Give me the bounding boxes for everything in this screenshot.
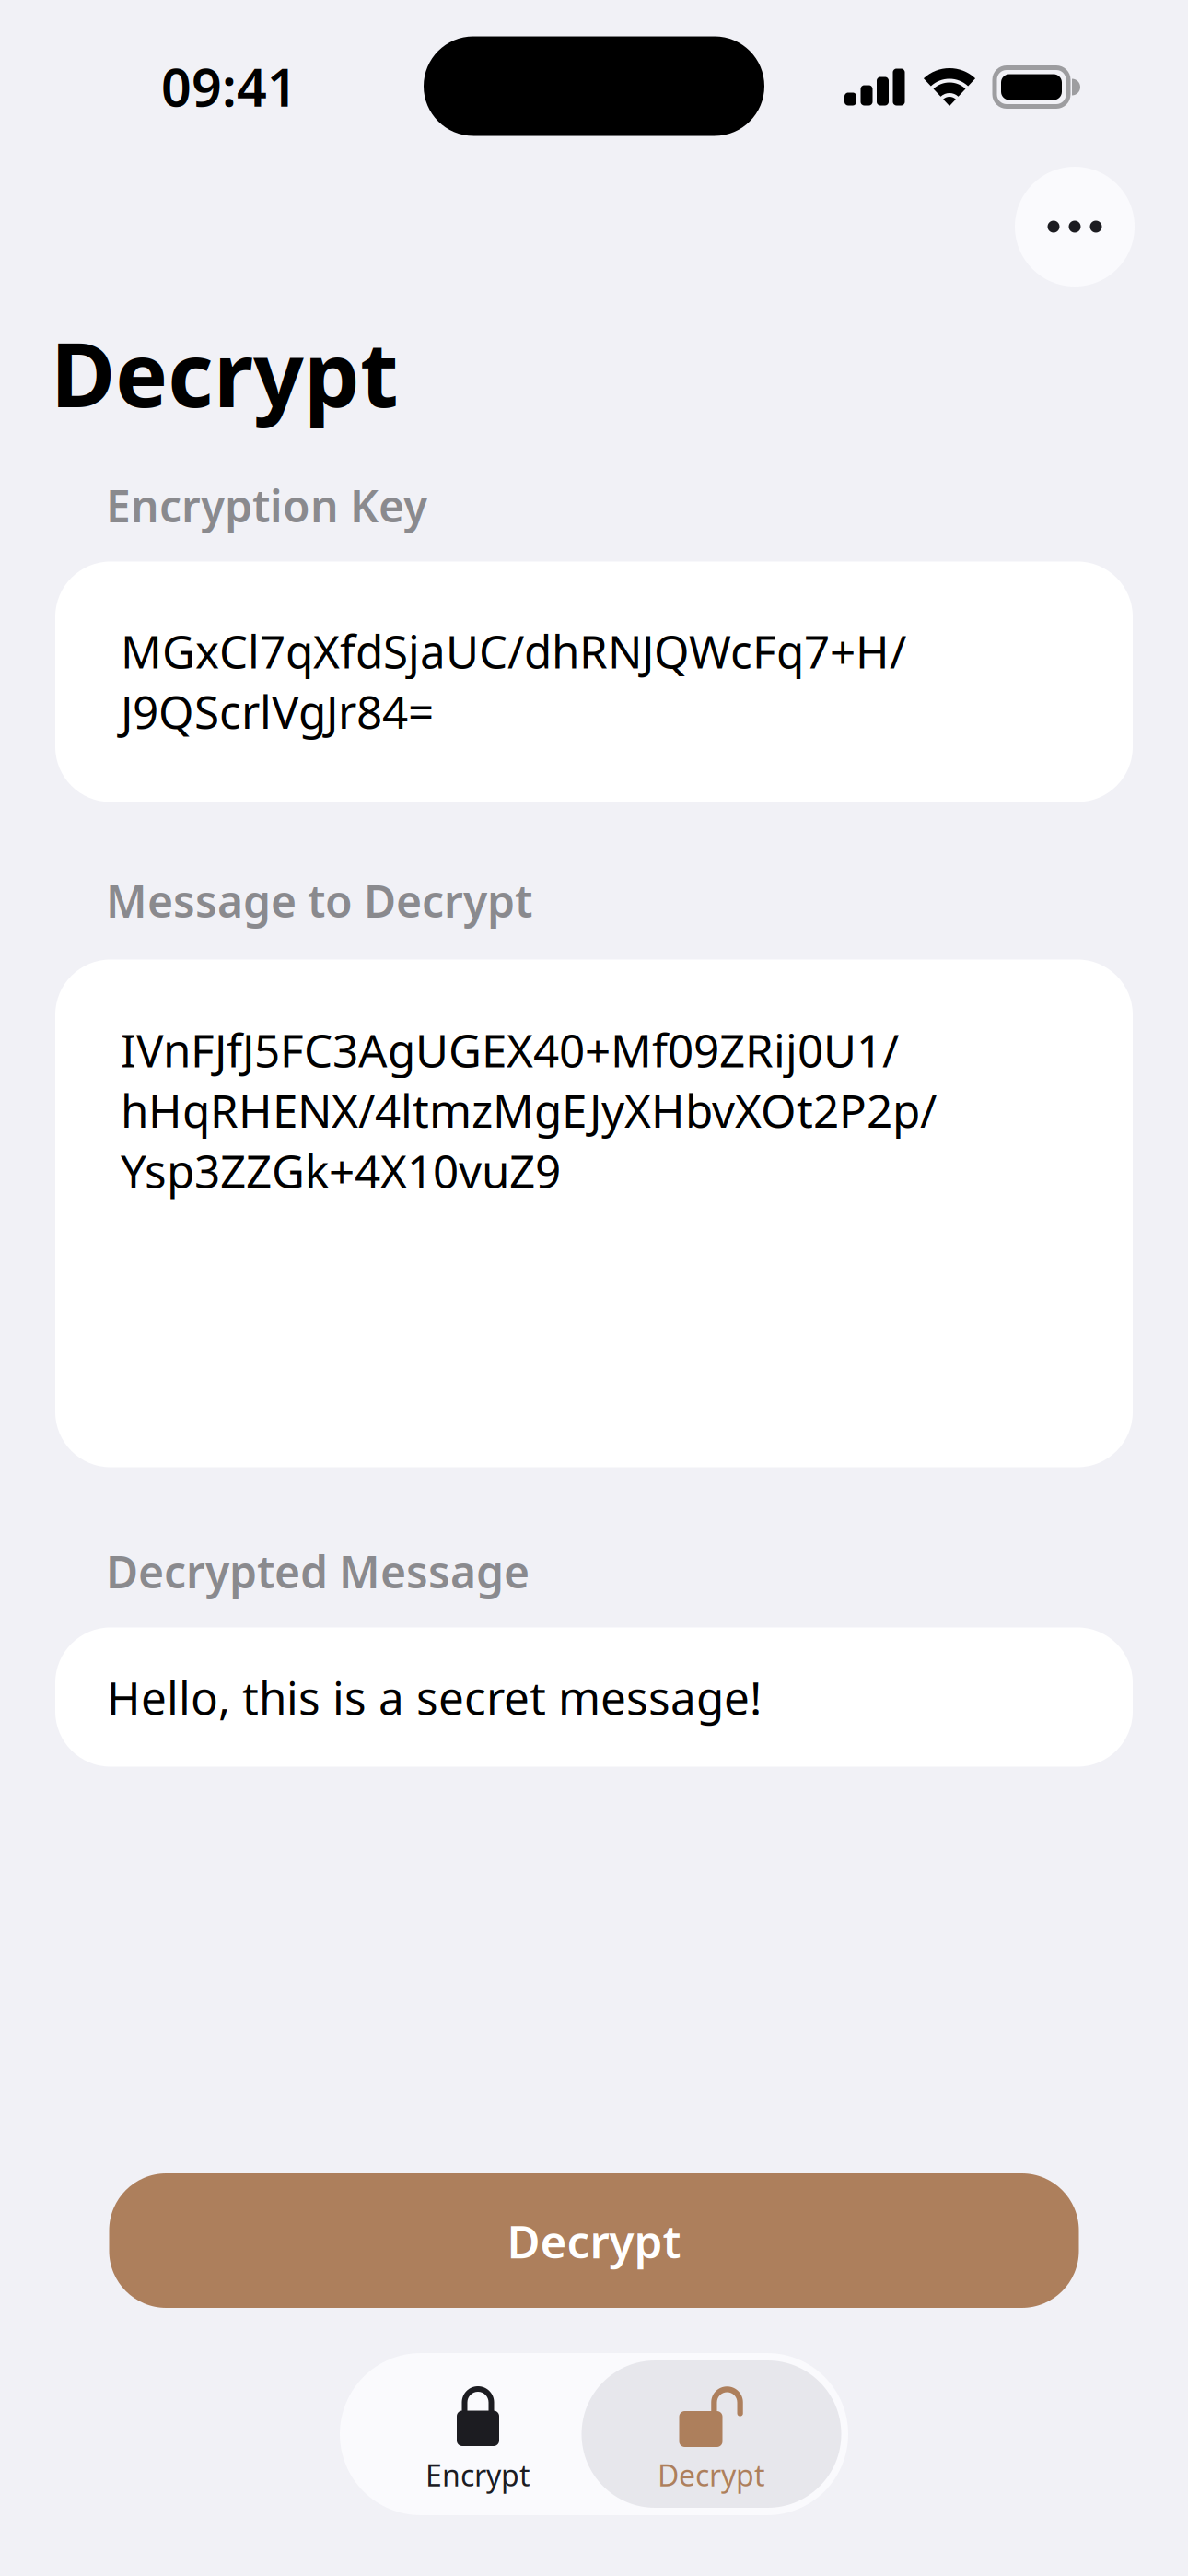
staticText: Hello, this is a secret message! — [107, 1667, 762, 1727]
button[interactable]: Encrypt — [347, 2360, 609, 2508]
button[interactable]: Decrypt — [109, 2173, 1079, 2308]
staticText: Encrypt — [425, 2455, 530, 2494]
staticText: Decrypted Message — [106, 1542, 530, 1601]
staticText: Decrypt — [51, 314, 399, 432]
staticText: Decrypt — [507, 2210, 681, 2271]
staticText: 09:41 — [161, 51, 297, 121]
staticText: Decrypt — [658, 2455, 765, 2494]
staticText: IVnFJfJ5FC3AgUGEX40+Mf09ZRij0U1/hHqRHENX… — [121, 1019, 937, 1200]
staticText: Message to Decrypt — [106, 871, 532, 930]
staticText: Encryption Key — [106, 476, 427, 535]
button[interactable]: Decrypt — [582, 2360, 841, 2508]
staticText: MGxCl7qXfdSjaUC/dhRNJQWcFq7+H/J9QScrlVgJ… — [121, 621, 906, 741]
button[interactable]: More options — [1015, 167, 1135, 287]
